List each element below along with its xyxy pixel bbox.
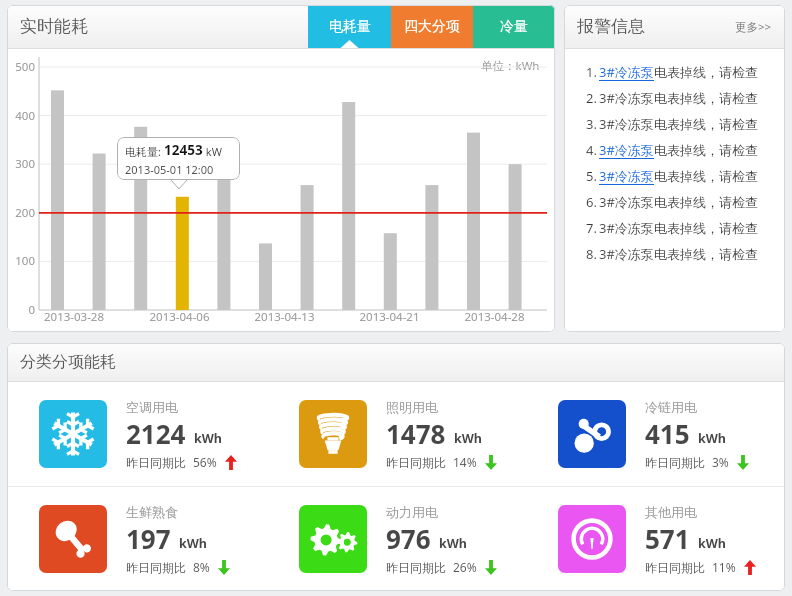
staticText: 1. (586, 63, 597, 81)
staticText: 8% (193, 559, 210, 575)
staticText: 300 (8, 156, 35, 172)
staticText: 200 (8, 205, 35, 221)
staticText: 12453 (164, 141, 203, 159)
other: Lighting energy (299, 400, 367, 468)
staticText: 2013-04-06 (127, 309, 232, 325)
staticText: 昨日同期比 (645, 455, 705, 470)
staticText: 报警信息 (577, 16, 645, 37)
button[interactable]: Fresh food energy (7, 487, 267, 591)
staticText: 电耗量 (329, 18, 371, 36)
staticText: kWh (194, 430, 222, 447)
staticText: 四大分项 (404, 18, 460, 36)
staticText: 电表掉线，请检查 (654, 246, 758, 262)
staticText: 3#冷冻泵 (599, 63, 654, 81)
staticText: 571 (645, 521, 690, 556)
button[interactable]: 8. (564, 241, 785, 267)
staticText: 电表掉线，请检查 (654, 64, 758, 80)
staticText: 4. (586, 141, 597, 159)
staticText: 976 (386, 521, 431, 556)
staticText: 昨日同期比 (126, 455, 186, 470)
staticText: 2013-04-13 (232, 309, 337, 325)
button[interactable]: Air conditioning energy (7, 382, 267, 486)
button[interactable]: 4. (564, 137, 785, 163)
staticText: kWh (698, 535, 726, 552)
button[interactable]: 更多>> (735, 19, 772, 35)
staticText: 6. (586, 193, 597, 211)
staticText: 昨日同期比 (386, 560, 446, 575)
staticText: 1478 (386, 416, 446, 451)
button[interactable]: 1. (564, 59, 785, 85)
other: Fresh food energy (39, 505, 107, 573)
staticText: 电耗量: (125, 144, 164, 159)
button[interactable]: Power energy (267, 487, 526, 591)
staticText: 3#冷冻泵 (599, 219, 654, 237)
staticText: 26% (453, 559, 477, 575)
staticText: 14% (453, 454, 477, 470)
staticText: 500 (8, 59, 35, 75)
button[interactable]: 6. (564, 189, 785, 215)
staticText: 11% (712, 559, 736, 575)
staticText: 电表掉线，请检查 (654, 142, 758, 158)
staticText: 电表掉线，请检查 (654, 116, 758, 132)
staticText: kWh (179, 535, 207, 552)
staticText: 3#冷冻泵 (599, 115, 654, 133)
button[interactable]: Lighting energy (267, 382, 526, 486)
staticText: 生鲜熟食 (126, 504, 178, 520)
button[interactable]: 7. (564, 215, 785, 241)
staticText: 100 (8, 253, 35, 269)
staticText: 2013-03-28 (21, 309, 127, 325)
staticText: 8. (586, 245, 597, 263)
staticText: 冷量 (500, 18, 528, 36)
button[interactable]: 冷量 (473, 5, 555, 48)
button[interactable]: Other energy (526, 487, 785, 591)
button[interactable]: 3. (564, 111, 785, 137)
button[interactable]: 5. (564, 163, 785, 189)
staticText: 单位：kWh (481, 58, 540, 74)
other: Cold chain energy (558, 400, 626, 468)
staticText: 3#冷冻泵 (599, 193, 654, 211)
staticText: 5. (586, 167, 597, 185)
staticText: 3#冷冻泵 (599, 89, 654, 107)
staticText: 动力用电 (386, 504, 438, 520)
staticText: 2013-05-01 12:00 (125, 162, 214, 177)
staticText: 分类分项能耗 (20, 352, 116, 372)
other: Power energy (299, 505, 367, 573)
staticText: 电表掉线，请检查 (654, 168, 758, 184)
staticText: 3% (712, 454, 729, 470)
staticText: 昨日同期比 (645, 560, 705, 575)
button[interactable]: 2. (564, 85, 785, 111)
staticText: kWh (698, 430, 726, 447)
staticText: kWh (454, 430, 482, 447)
button[interactable]: 电耗量 (308, 5, 391, 48)
staticText: 2013-04-21 (337, 309, 442, 325)
staticText: 400 (8, 108, 35, 124)
staticText: 电表掉线，请检查 (654, 220, 758, 236)
staticText: 2. (586, 89, 597, 107)
staticText: 昨日同期比 (126, 560, 186, 575)
staticText: 电表掉线，请检查 (654, 90, 758, 106)
other: Other energy (558, 505, 626, 573)
staticText: 其他用电 (645, 504, 697, 520)
staticText: 197 (126, 521, 171, 556)
staticText: 实时能耗 (20, 16, 88, 37)
staticText: kW (203, 144, 222, 159)
staticText: 7. (586, 219, 597, 237)
staticText: 空调用电 (126, 399, 178, 415)
staticText: 电表掉线，请检查 (654, 194, 758, 210)
staticText: 3#冷冻泵 (599, 167, 654, 185)
staticText: 56% (193, 454, 217, 470)
staticText: 2013-04-28 (442, 309, 547, 325)
staticText: 照明用电 (386, 399, 438, 415)
staticText: kWh (439, 535, 467, 552)
staticText: 更多>> (735, 19, 772, 35)
button[interactable]: Cold chain energy (526, 382, 785, 486)
staticText: 3. (586, 115, 597, 133)
other: Air conditioning energy (39, 400, 107, 468)
staticText: 3#冷冻泵 (599, 245, 654, 263)
button[interactable]: 四大分项 (391, 5, 473, 48)
staticText: 3#冷冻泵 (599, 141, 654, 159)
staticText: 415 (645, 416, 690, 451)
staticText: 冷链用电 (645, 399, 697, 415)
staticText: 0 (8, 302, 35, 318)
staticText: 2124 (126, 416, 186, 451)
